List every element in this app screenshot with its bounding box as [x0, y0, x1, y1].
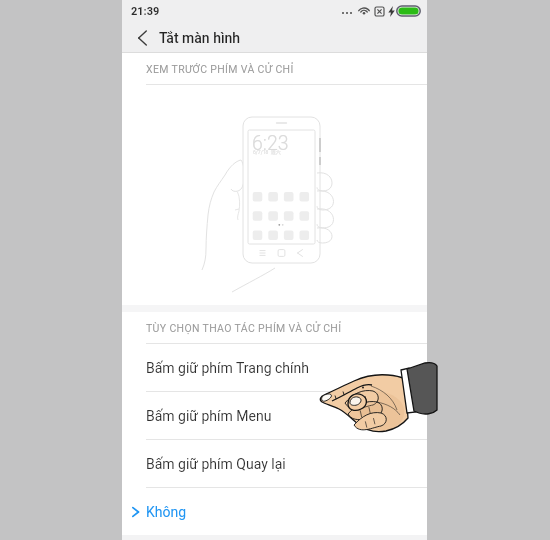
button[interactable]: Không — [122, 488, 427, 535]
staticText: Bấm giữ phím Menu — [146, 408, 272, 424]
staticText: Không — [146, 504, 187, 520]
staticText: Tắt màn hình — [159, 30, 241, 46]
staticText: XEM TRƯỚC PHÍM VÀ CỬ CHỈ — [146, 63, 294, 75]
staticText: Bấm giữ phím Quay lại — [146, 456, 286, 472]
button[interactable]: Bấm giữ phím Menu — [122, 392, 427, 440]
staticText: TÙY CHỌN THAO TÁC PHÍM VÀ CỬ CHỈ — [146, 322, 342, 334]
staticText: Bấm giữ phím Trang chính — [146, 360, 309, 376]
button[interactable]: Bấm giữ phím Quay lại — [122, 440, 427, 488]
staticText: 6:23 — [252, 132, 289, 155]
staticText: 6/7/18 週六 — [253, 149, 281, 155]
button[interactable]: Bấm giữ phím Trang chính — [122, 344, 427, 392]
button[interactable]: Back — [131, 25, 153, 51]
staticText: 21:39 — [131, 5, 160, 18]
